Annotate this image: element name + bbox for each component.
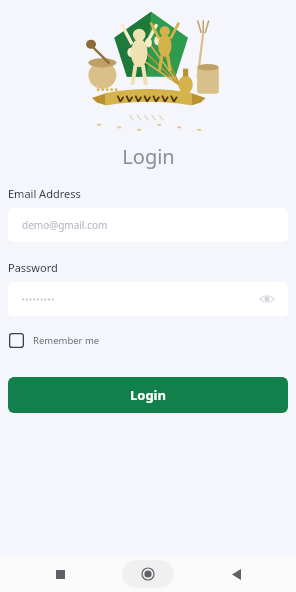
button[interactable]: Home bbox=[122, 559, 174, 589]
button[interactable]: Login bbox=[8, 377, 288, 413]
staticText: Login bbox=[130, 386, 166, 404]
button[interactable]: Show password bbox=[8, 282, 288, 316]
button[interactable]: Recent apps bbox=[45, 559, 75, 589]
staticText: Email Address bbox=[8, 186, 81, 201]
button[interactable]: Show password bbox=[256, 288, 278, 310]
staticText: Login bbox=[122, 143, 175, 170]
button[interactable]: Back bbox=[221, 559, 251, 589]
staticText: demo@gmail.com bbox=[22, 218, 108, 232]
button[interactable]: demo@gmail.com bbox=[8, 208, 288, 242]
staticText: Password bbox=[8, 260, 58, 275]
button[interactable]: Remember me bbox=[8, 330, 101, 351]
staticText: Remember me bbox=[33, 334, 100, 347]
